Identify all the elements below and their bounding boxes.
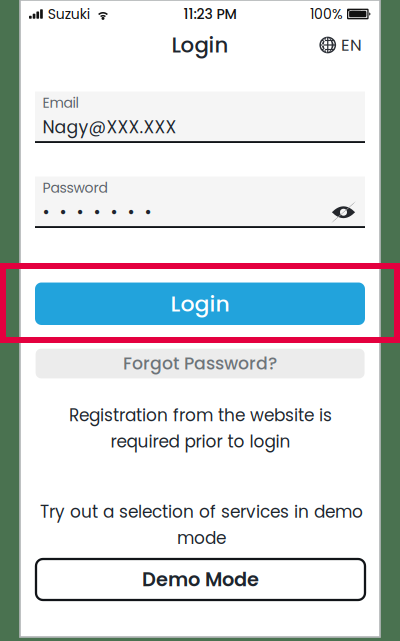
staticText: Demo Mode bbox=[142, 566, 259, 593]
staticText: Registration from the website is bbox=[69, 403, 332, 427]
staticText: Try out a selection of services in demo bbox=[40, 500, 363, 524]
button[interactable]: Language: English bbox=[313, 29, 367, 61]
staticText: • • • • • • • bbox=[42, 200, 151, 224]
button[interactable]: Login bbox=[35, 282, 365, 325]
staticText: 11:23 PM bbox=[184, 4, 237, 24]
staticText: mode bbox=[177, 526, 226, 550]
button[interactable]: Show password bbox=[331, 203, 356, 221]
staticText: EN bbox=[341, 33, 362, 57]
staticText: Suzuki bbox=[48, 4, 90, 24]
staticText: required prior to login bbox=[110, 430, 290, 453]
staticText: Nagy@XXX.XXX bbox=[42, 115, 176, 139]
staticText: Forgot Password? bbox=[123, 351, 277, 376]
staticText: Email bbox=[42, 93, 78, 113]
button[interactable]: Forgot Password? bbox=[36, 349, 365, 378]
button[interactable]: Demo Mode bbox=[36, 559, 365, 600]
staticText: 100% bbox=[310, 4, 343, 24]
staticText: Login bbox=[170, 288, 229, 319]
staticText: Login bbox=[171, 30, 228, 60]
staticText: Password bbox=[42, 178, 107, 198]
